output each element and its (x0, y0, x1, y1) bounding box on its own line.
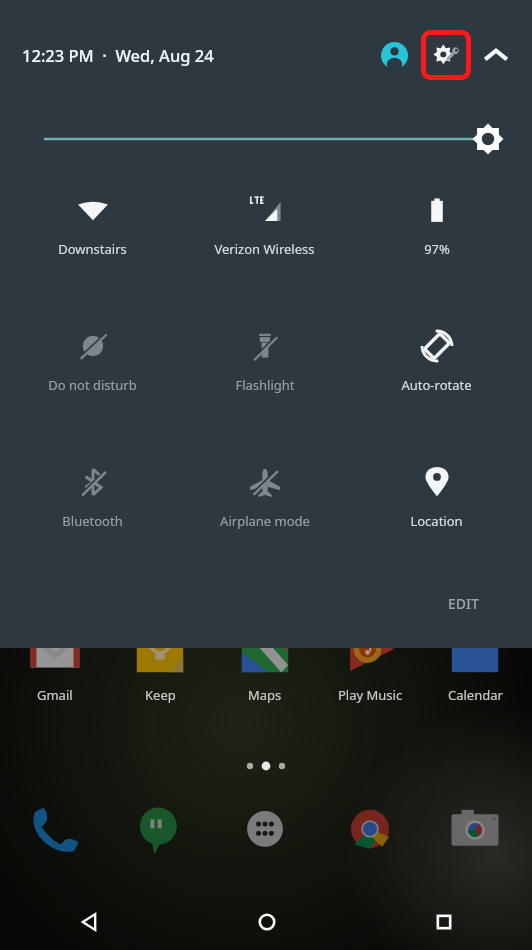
staticText: Do not disturb (48, 376, 137, 394)
button[interactable]: Recents (355, 894, 532, 950)
button[interactable]: Auto-rotate (348, 324, 525, 414)
button[interactable]: Hangouts (126, 796, 194, 864)
button[interactable]: EDIT (448, 594, 479, 613)
button[interactable]: Play Music (322, 620, 418, 732)
staticText: Airplane mode (220, 512, 310, 530)
button[interactable]: Do not disturb (4, 324, 181, 414)
staticText: 97% (424, 240, 450, 258)
button[interactable]: Keep (112, 620, 208, 732)
button[interactable]: Chrome (336, 796, 404, 864)
button[interactable]: Camera (441, 796, 509, 864)
button[interactable]: Collapse (474, 33, 518, 77)
button[interactable]: Location (348, 460, 525, 550)
button[interactable]: Calendar (427, 620, 523, 732)
button[interactable]: Airplane mode (176, 460, 353, 550)
staticText: Flashlight (235, 376, 295, 394)
staticText: Play Music (338, 686, 403, 704)
button[interactable]: Bluetooth (4, 460, 181, 550)
staticText: Bluetooth (62, 512, 123, 530)
button[interactable]: Settings (420, 29, 472, 81)
staticText: Location (410, 512, 463, 530)
staticText: Gmail (37, 686, 73, 704)
button[interactable] (0, 110, 532, 170)
button[interactable]: All apps (231, 796, 299, 864)
staticText: 12:23 PM · Wed, Aug 24 (22, 44, 214, 66)
staticText: Calendar (448, 686, 503, 704)
button[interactable]: 97% (348, 188, 525, 278)
staticText: EDIT (448, 594, 479, 613)
button[interactable]: Phone (21, 796, 89, 864)
button[interactable]: Back (0, 894, 178, 950)
button[interactable]: Home (178, 894, 355, 950)
staticText: Keep (145, 686, 176, 704)
button[interactable]: User profile (372, 33, 416, 77)
staticText: Verizon Wireless (214, 240, 315, 258)
button[interactable]: Maps (217, 620, 313, 732)
button[interactable]: Flashlight (176, 324, 353, 414)
button[interactable]: Gmail (7, 620, 103, 732)
button[interactable]: Downstairs (4, 188, 181, 278)
staticText: Auto-rotate (401, 376, 472, 394)
staticText: Downstairs (58, 240, 127, 258)
staticText: Maps (248, 686, 282, 704)
button[interactable]: Verizon Wireless (176, 188, 353, 278)
